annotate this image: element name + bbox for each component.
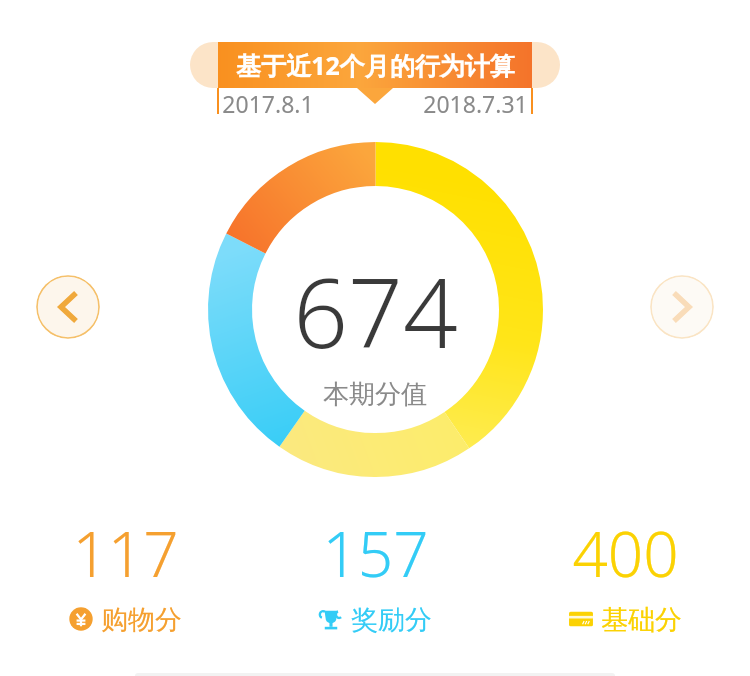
- button[interactable]: 基于近12个月的行为计算: [218, 42, 532, 88]
- staticText: 购物分: [101, 603, 182, 635]
- staticText: 157: [322, 511, 429, 595]
- staticText: 本期分值: [323, 378, 427, 411]
- button[interactable]: 400: [500, 505, 750, 635]
- staticText: 基础分: [601, 603, 682, 635]
- button[interactable]: 117: [0, 505, 250, 635]
- button[interactable]: Next period: [650, 275, 714, 339]
- staticText: 基于近12个月的行为计算: [236, 48, 515, 82]
- button[interactable]: Previous period: [36, 275, 100, 339]
- staticText: 奖励分: [351, 603, 432, 635]
- staticText: 674: [293, 245, 458, 376]
- staticText: 400: [572, 511, 679, 595]
- staticText: 2018.7.31: [423, 88, 528, 114]
- staticText: 2017.8.1: [222, 88, 314, 114]
- button[interactable]: 157: [250, 505, 500, 635]
- staticText: 117: [72, 511, 179, 595]
